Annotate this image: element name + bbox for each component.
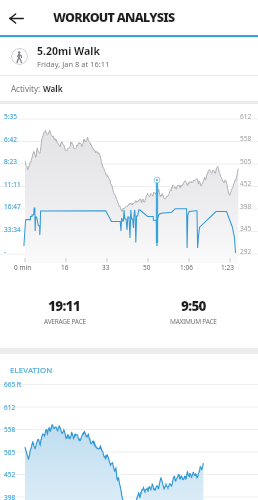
staticText: MAXIMUM PACE (170, 317, 217, 326)
button[interactable]: 19:11 (0, 297, 129, 326)
staticText: - (4, 247, 7, 256)
staticText: AVERAGE PACE (44, 317, 86, 326)
staticText: 612 (240, 112, 252, 121)
staticText: Activity: (11, 83, 43, 94)
staticText: 612 (4, 403, 16, 412)
staticText: 16:47 (4, 202, 21, 211)
button[interactable]: Back (0, 2, 32, 34)
staticText: 1:06 (180, 263, 193, 272)
staticText: 505 (240, 157, 252, 166)
staticText: 505 (4, 448, 16, 457)
staticText: 558 (240, 134, 252, 143)
staticText: 8:23 (4, 157, 17, 166)
staticText: 5.20mi Walk (37, 44, 100, 58)
staticText: 9:50 (181, 297, 206, 315)
staticText: 16 (61, 263, 69, 272)
staticText: 452 (4, 470, 16, 479)
staticText: 6:42 (4, 135, 17, 144)
staticText: 33 (102, 263, 110, 272)
staticText: 345 (240, 224, 252, 233)
staticText: Walk (43, 83, 63, 94)
staticText: 5:35 (4, 112, 17, 121)
staticText: 0 min (14, 263, 32, 272)
staticText: ELEVATION (10, 365, 53, 376)
button[interactable]: 9:50 (129, 297, 258, 326)
staticText: Friday, Jan 8 at 16:11 (37, 59, 110, 69)
staticText: 1:23 (221, 263, 234, 272)
staticText: 665 ft (4, 380, 22, 389)
staticText: WORKOUT ANALYSIS (53, 9, 175, 26)
staticText: 452 (240, 179, 252, 188)
staticText: 33:34 (4, 225, 21, 234)
staticText: 19:11 (48, 297, 81, 315)
staticText: 398 (240, 202, 252, 211)
staticText: 558 (4, 425, 16, 434)
staticText: 398 (4, 493, 16, 500)
staticText: 50 (143, 263, 151, 272)
staticText: 11:11 (4, 180, 21, 189)
staticText: 292 (240, 247, 252, 256)
